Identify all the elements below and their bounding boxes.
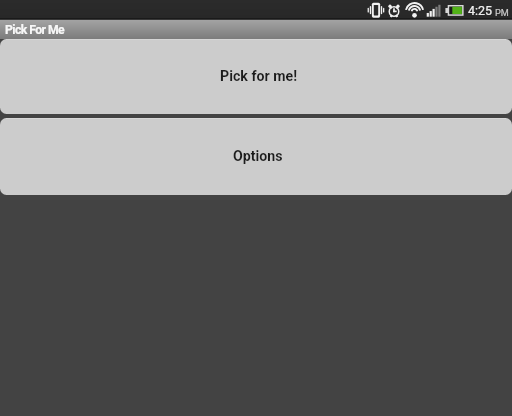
other: Wi-Fi connected: [405, 1, 424, 20]
other: Mobile signal: [427, 1, 441, 20]
button[interactable]: Options: [0, 118, 512, 195]
button[interactable]: Pick For Me: [0, 21, 71, 39]
staticText: PM: [495, 7, 509, 18]
button[interactable]: Pick for me!: [0, 39, 512, 114]
staticText: Pick for me!: [220, 68, 297, 85]
staticText: 4:25: [468, 3, 493, 18]
other: Battery: [445, 1, 464, 20]
other: Alarm set: [387, 1, 401, 20]
staticText: Options: [233, 148, 283, 165]
other: Vibrate mode: [369, 1, 384, 20]
